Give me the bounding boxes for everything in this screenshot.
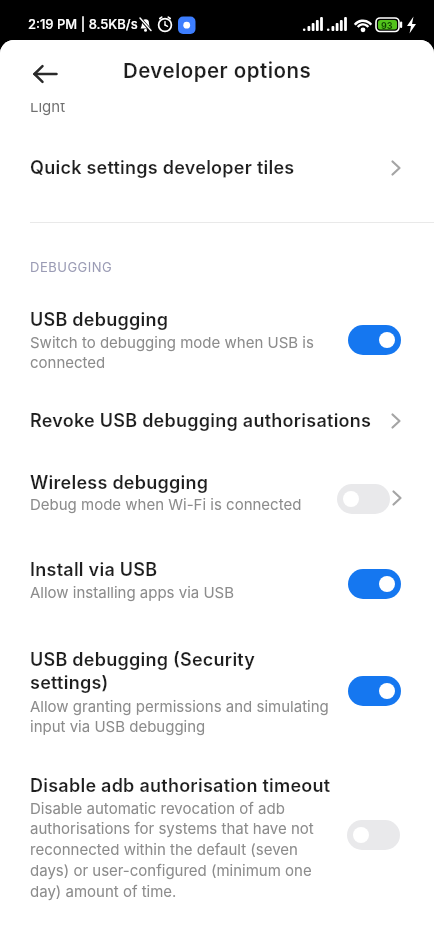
button[interactable]: [0, 468, 434, 534]
button[interactable]: [0, 395, 434, 451]
button[interactable]: [337, 484, 390, 514]
staticText: Developer options: [0, 58, 434, 83]
button[interactable]: [348, 569, 401, 599]
button[interactable]: [33, 65, 58, 83]
button[interactable]: [348, 325, 401, 355]
button[interactable]: [348, 676, 401, 706]
staticText: Quick settings developer tiles: [30, 157, 360, 179]
staticText: Disable automatic revocation of adb auth…: [30, 799, 370, 901]
staticText: 93: [381, 20, 393, 31]
staticText: DEBUGGING: [30, 259, 113, 275]
staticText: Light: [30, 97, 66, 115]
staticText: Disable adb authorisation timeout: [30, 775, 360, 797]
button[interactable]: [0, 636, 434, 746]
staticText: Install via USB: [30, 559, 360, 581]
button[interactable]: [0, 295, 434, 387]
staticText: 2:19 PM | 8.5KB/s: [28, 16, 138, 32]
staticText: USB debugging (Security settings): [30, 649, 360, 693]
staticText: Wireless debugging: [30, 472, 360, 494]
button[interactable]: [347, 820, 400, 850]
button[interactable]: [0, 140, 434, 202]
staticText: Switch to debugging mode when USB is con…: [30, 333, 370, 372]
staticText: Debug mode when Wi-Fi is connected: [30, 495, 370, 513]
staticText: Revoke USB debugging authorisations: [30, 410, 390, 432]
button[interactable]: [0, 766, 434, 916]
staticText: USB debugging: [30, 309, 360, 331]
button[interactable]: [0, 546, 434, 612]
staticText: Allow installing apps via USB: [30, 583, 370, 601]
staticText: Allow granting permissions and simulatin…: [30, 697, 370, 736]
